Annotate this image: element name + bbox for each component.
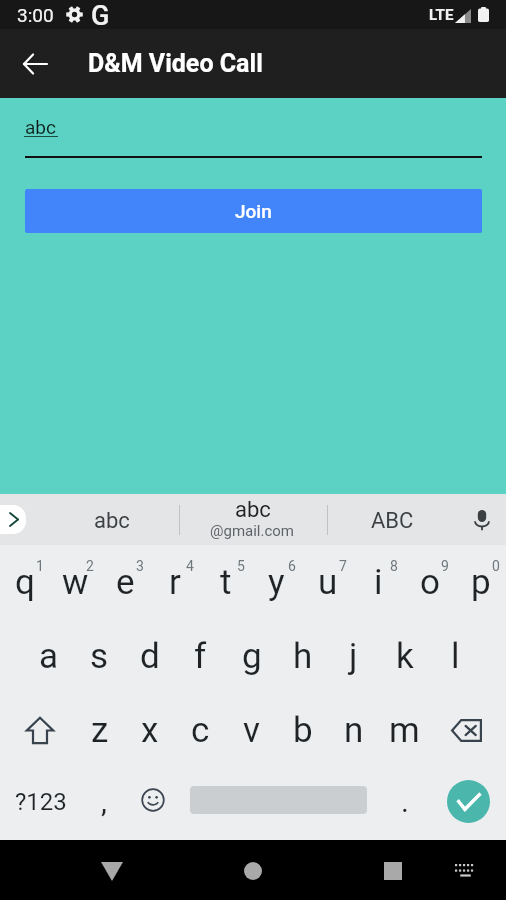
staticText: g — [242, 636, 262, 677]
button[interactable]: g — [226, 619, 277, 693]
staticText: 5 — [237, 558, 245, 574]
button[interactable]: u — [302, 545, 353, 619]
button[interactable]: q — [0, 545, 50, 619]
staticText: . — [401, 784, 409, 819]
staticText: z — [91, 710, 109, 751]
button[interactable]: Shift — [0, 693, 75, 767]
staticText: @gmail.com — [210, 522, 295, 540]
button[interactable]: Back — [11, 40, 59, 88]
button[interactable]: y — [251, 545, 302, 619]
staticText: k — [396, 636, 414, 677]
staticText: c — [191, 710, 210, 751]
staticText: LTE — [429, 6, 454, 24]
staticText: ?123 — [15, 788, 67, 816]
button[interactable]: Backspace — [430, 693, 506, 767]
button[interactable]: Expand toolbar — [0, 505, 26, 534]
button[interactable]: o — [404, 545, 455, 619]
staticText: q — [15, 562, 35, 603]
button[interactable]: m — [379, 693, 430, 767]
staticText: p — [471, 562, 491, 603]
staticText: abc — [235, 497, 271, 523]
button[interactable]: Home — [229, 846, 277, 894]
staticText: e — [116, 562, 135, 603]
staticText: b — [293, 710, 313, 751]
button[interactable]: k — [379, 619, 430, 693]
button[interactable]: . — [379, 766, 430, 840]
button[interactable]: a — [24, 619, 74, 693]
button[interactable]: Back — [88, 846, 136, 894]
button[interactable]: Voice input — [458, 494, 506, 545]
staticText: G — [91, 0, 110, 29]
staticText: u — [318, 562, 338, 603]
button[interactable]: c — [175, 693, 226, 767]
staticText: l — [451, 636, 460, 677]
staticText: d — [140, 636, 160, 677]
staticText: f — [194, 636, 207, 677]
staticText: 6 — [288, 558, 296, 574]
staticText: n — [344, 710, 364, 751]
staticText: 4 — [186, 558, 194, 574]
button[interactable]: Join — [25, 189, 482, 233]
button[interactable]: f — [175, 619, 226, 693]
button[interactable]: j — [328, 619, 379, 693]
staticText: 9 — [441, 558, 449, 574]
button[interactable]: , — [75, 766, 126, 840]
button[interactable]: v — [226, 693, 277, 767]
button[interactable]: i — [353, 545, 404, 619]
staticText: abc — [25, 116, 56, 138]
staticText: t — [220, 562, 232, 603]
button[interactable]: Recent apps — [369, 846, 417, 894]
staticText: D&M Video Call — [88, 49, 263, 78]
button[interactable]: x — [125, 693, 175, 767]
staticText: 7 — [339, 558, 347, 574]
button[interactable]: Emoji — [126, 766, 177, 840]
button[interactable]: b — [277, 693, 328, 767]
staticText: ABC — [371, 508, 414, 534]
button[interactable]: ?123 — [0, 766, 75, 840]
button[interactable]: p — [455, 545, 506, 619]
staticText: a — [39, 636, 59, 677]
button[interactable]: s — [74, 619, 124, 693]
staticText: 0 — [492, 558, 500, 574]
staticText: 3:00 — [17, 4, 54, 26]
button[interactable]: r — [150, 545, 200, 619]
button[interactable]: l — [430, 619, 481, 693]
button[interactable]: h — [277, 619, 328, 693]
staticText: m — [389, 710, 420, 751]
button[interactable]: abc — [60, 494, 164, 545]
staticText: v — [243, 710, 260, 751]
button[interactable] — [177, 766, 379, 840]
button[interactable]: n — [328, 693, 379, 767]
staticText: w — [62, 562, 89, 603]
staticText: o — [420, 562, 440, 603]
staticText: x — [141, 710, 159, 751]
button[interactable]: z — [75, 693, 125, 767]
button[interactable]: abc — [190, 494, 314, 545]
button[interactable]: w — [50, 545, 100, 619]
button[interactable]: e — [100, 545, 150, 619]
staticText: , — [101, 784, 107, 819]
staticText: Join — [235, 200, 272, 222]
staticText: 8 — [390, 558, 398, 574]
staticText: j — [349, 636, 358, 677]
staticText: i — [374, 562, 383, 603]
staticText: s — [90, 636, 109, 677]
staticText: abc — [94, 508, 130, 534]
staticText: 3 — [136, 558, 144, 574]
staticText: h — [293, 636, 313, 677]
button[interactable]: ABC — [340, 494, 444, 545]
button[interactable]: Enter — [430, 766, 506, 840]
button[interactable]: t — [200, 545, 251, 619]
staticText: y — [268, 562, 285, 603]
button[interactable]: d — [124, 619, 175, 693]
button[interactable]: Switch keyboard — [440, 846, 488, 894]
staticText: r — [169, 562, 181, 603]
staticText: 1 — [36, 558, 44, 574]
staticText: 2 — [86, 558, 94, 574]
